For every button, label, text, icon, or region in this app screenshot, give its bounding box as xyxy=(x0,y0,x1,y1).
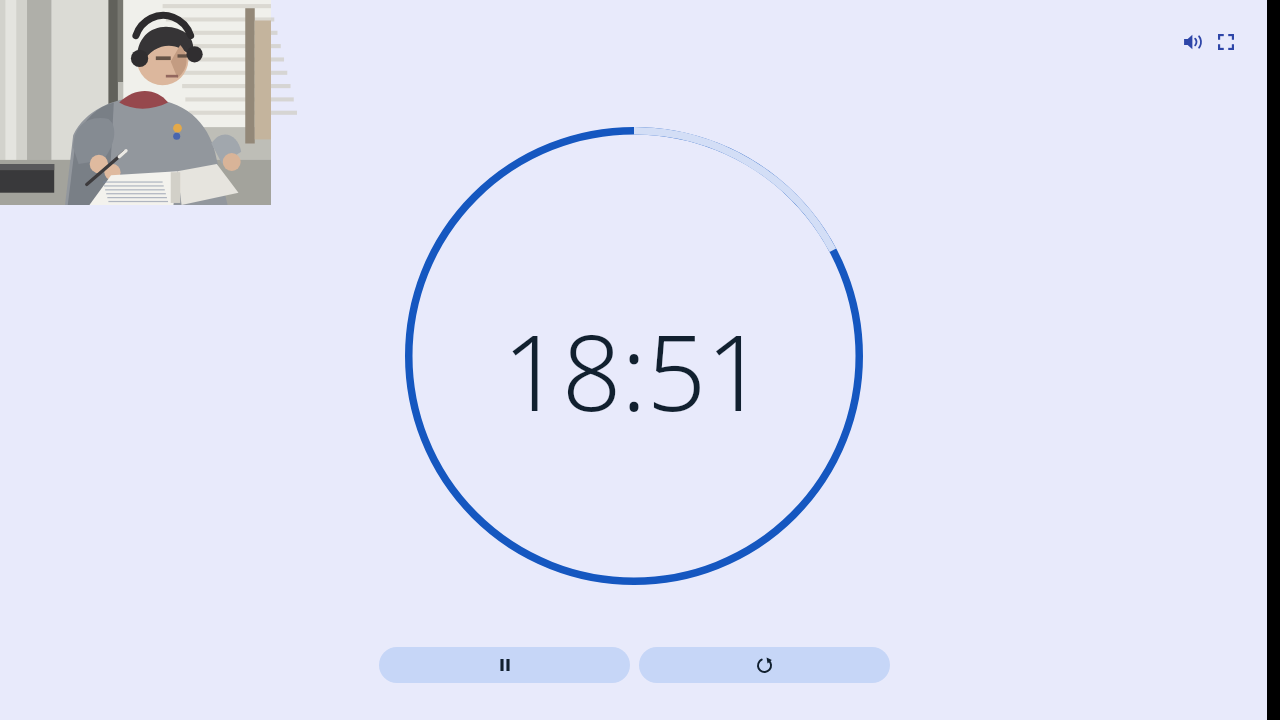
button[interactable]: Mute xyxy=(1178,28,1206,56)
button[interactable]: Fullscreen xyxy=(1212,28,1240,56)
button[interactable]: Restart xyxy=(639,647,890,683)
button[interactable]: Pause xyxy=(379,647,630,683)
staticText: 18:51 xyxy=(404,300,864,420)
